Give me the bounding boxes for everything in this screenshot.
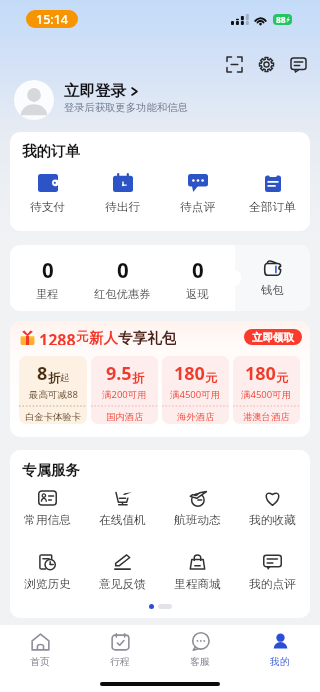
button[interactable]: 客服 xyxy=(160,625,240,675)
button[interactable]: 我的收藏 xyxy=(235,490,310,528)
staticText: 海外酒店 xyxy=(177,411,215,423)
button[interactable]: 意见反馈 xyxy=(85,554,160,592)
button[interactable]: 立即登录 xyxy=(14,73,306,127)
button[interactable]: 我的点评 xyxy=(235,554,310,592)
button[interactable]: 180 xyxy=(233,356,300,424)
staticText: 登录后获取更多功能和信息 xyxy=(64,101,188,114)
staticText: 我的 xyxy=(270,656,290,668)
staticText: 满200可用 xyxy=(102,388,147,401)
button[interactable]: 0 xyxy=(85,245,160,311)
staticText: 红包优惠券 xyxy=(94,287,151,301)
staticText: 常用信息 xyxy=(24,513,71,528)
staticText: 待点评 xyxy=(180,200,216,215)
staticText: 0 xyxy=(117,256,129,284)
button[interactable]: 浏览历史 xyxy=(10,554,85,592)
staticText: 0 xyxy=(192,256,204,284)
staticText: 起 xyxy=(60,372,70,384)
staticText: 88 xyxy=(276,14,286,25)
button[interactable]: 首页 xyxy=(0,625,80,675)
staticText: 航班动态 xyxy=(174,513,221,528)
button[interactable]: 180 xyxy=(162,356,229,424)
button[interactable]: 行程 xyxy=(80,625,160,675)
button[interactable]: 里程商城 xyxy=(160,554,235,592)
staticText: 返现 xyxy=(186,287,209,301)
staticText: 元 xyxy=(76,329,89,344)
staticText: 180 xyxy=(174,361,205,386)
staticText: 满4500可用 xyxy=(241,388,292,401)
button[interactable]: 待出行 xyxy=(85,174,160,215)
staticText: 满4500可用 xyxy=(170,388,221,401)
button[interactable]: 8 xyxy=(19,356,87,424)
button[interactable]: 0 xyxy=(160,245,235,311)
staticText: 里程 xyxy=(36,287,59,301)
staticText: 元 xyxy=(205,370,217,385)
staticText: 客服 xyxy=(190,656,210,668)
button[interactable]: Messages xyxy=(282,49,314,79)
staticText: 我的点评 xyxy=(249,577,296,592)
staticText: 里程商城 xyxy=(174,577,221,592)
staticText: 新人 xyxy=(89,329,118,345)
staticText: 国内酒店 xyxy=(106,411,144,423)
button[interactable]: Settings xyxy=(250,49,282,79)
button[interactable]: 全部订单 xyxy=(235,174,310,215)
button[interactable]: 我的 xyxy=(240,625,320,675)
button[interactable]: 立即领取 xyxy=(244,329,302,345)
button[interactable]: Scan xyxy=(218,49,250,79)
staticText: 折 xyxy=(48,370,60,385)
staticText: 元 xyxy=(276,370,288,385)
button[interactable]: 钱包 xyxy=(235,245,310,311)
staticText: 折 xyxy=(132,370,144,385)
button[interactable]: 9.5 xyxy=(91,356,158,424)
staticText: 待出行 xyxy=(105,200,141,215)
staticText: 意见反馈 xyxy=(99,577,146,592)
staticText: 180 xyxy=(245,361,276,386)
staticText: 8 xyxy=(37,361,48,386)
button[interactable]: 航班动态 xyxy=(160,490,235,528)
button[interactable]: 待点评 xyxy=(160,174,235,215)
staticText: 我的订单 xyxy=(22,142,80,160)
staticText: 9.5 xyxy=(106,361,132,386)
staticText: 立即领取 xyxy=(252,331,294,344)
staticText: 立即登录 xyxy=(64,81,126,101)
staticText: 专属服务 xyxy=(22,461,80,479)
button[interactable]: 待支付 xyxy=(10,174,85,215)
staticText: 钱包 xyxy=(261,283,284,297)
staticText: 0 xyxy=(42,256,54,284)
staticText: 专享礼包 xyxy=(118,329,176,345)
staticText: 港澳台酒店 xyxy=(243,411,290,423)
button[interactable]: 在线值机 xyxy=(85,490,160,528)
button[interactable]: 0 xyxy=(10,245,85,311)
staticText: 1288 xyxy=(39,329,76,345)
staticText: 最高可减88 xyxy=(29,388,78,401)
staticText: 行程 xyxy=(110,656,130,668)
staticText: 首页 xyxy=(30,656,50,668)
staticText: 待支付 xyxy=(30,200,66,215)
staticText: 全部订单 xyxy=(249,200,296,215)
staticText: 白金卡体验卡 xyxy=(25,411,81,423)
staticText: 15:14 xyxy=(36,11,69,28)
button[interactable]: 常用信息 xyxy=(10,490,85,528)
staticText: 我的收藏 xyxy=(249,513,296,528)
staticText: 在线值机 xyxy=(99,513,146,528)
staticText: 浏览历史 xyxy=(24,577,71,592)
